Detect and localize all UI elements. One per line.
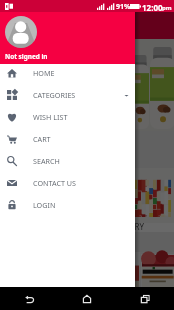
staticText: 91% [116, 2, 131, 12]
button[interactable]: WISH LIST [0, 106, 135, 128]
staticText: 12:00 [142, 2, 163, 13]
staticText: CONTACT US [33, 178, 77, 188]
staticText: CART [33, 134, 51, 144]
staticText: CATEGORIES [33, 90, 76, 100]
button[interactable]: Back [0, 287, 58, 310]
button[interactable]: SEARCH [0, 150, 135, 172]
button[interactable]: CONTACT US [0, 172, 135, 194]
staticText: WISH LIST [33, 112, 68, 122]
button[interactable]: Recents [116, 287, 174, 310]
button[interactable]: HOME [0, 62, 135, 84]
staticText: SEARCH [33, 156, 60, 166]
staticText: HOME [33, 68, 55, 78]
staticText: GROCERY [108, 221, 145, 232]
staticText: LOGIN [33, 200, 56, 210]
button[interactable]: LOGIN [0, 194, 135, 216]
button[interactable]: CART [0, 128, 135, 150]
staticText: pm [162, 4, 172, 12]
button[interactable]: Home [58, 287, 116, 310]
button[interactable]: CATEGORIES [0, 84, 135, 106]
staticText: Not signed in [5, 52, 48, 61]
